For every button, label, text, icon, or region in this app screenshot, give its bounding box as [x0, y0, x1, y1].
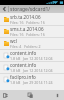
staticText: 1.8 kB Jan 12 2014 12:04	[10, 68, 53, 73]
button[interactable]: content.info	[0, 62, 64, 73]
staticText: content.info	[10, 50, 37, 56]
staticText: Files: 16 Folders: 16	[10, 32, 45, 37]
button[interactable]: Paste	[2, 92, 9, 99]
button[interactable]: Copy	[27, 92, 34, 99]
button[interactable]: srb.ta.2014.06	[0, 13, 64, 25]
staticText: Files: 16 Folders: 16	[10, 20, 45, 25]
staticText: 1.8 kB Jan 12 2014 12:04	[10, 56, 53, 61]
staticText: wcl	[10, 38, 18, 44]
button[interactable]: facilpro.info	[0, 74, 64, 85]
button[interactable]: wcl	[0, 38, 64, 49]
staticText: content.info	[10, 62, 37, 68]
staticText: 1.8 kB Jan 29 2014 11:24	[10, 80, 53, 85]
staticText: storage/sdcard1/apps/...	[10, 6, 64, 13]
staticText: Files: 4 Folders: 2	[10, 44, 41, 49]
staticText: facilpro.info	[10, 74, 36, 80]
staticText: srb.ta.2014.06	[10, 14, 41, 20]
button[interactable]: Navigate up	[0, 5, 8, 13]
button[interactable]: sms.t.a.2014.06	[0, 26, 64, 37]
button[interactable]: More options	[54, 92, 61, 99]
staticText: sms.t.a.2014.06	[10, 26, 44, 32]
button[interactable]: content.info	[0, 50, 64, 61]
